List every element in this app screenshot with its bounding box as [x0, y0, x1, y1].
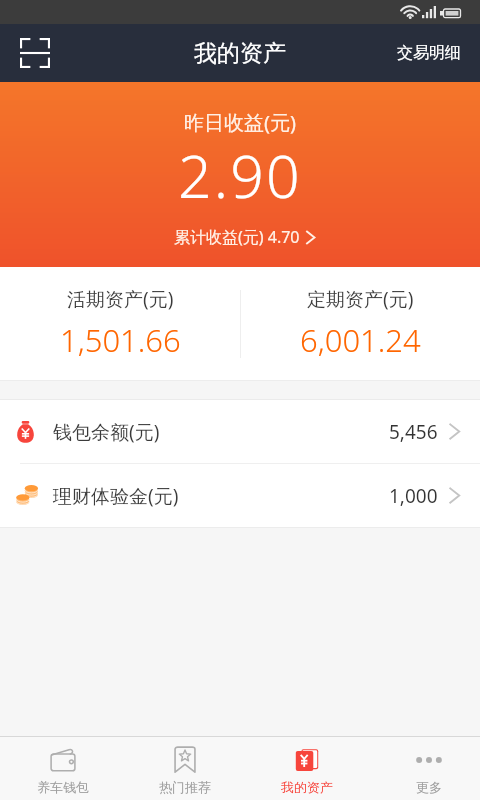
staticText: 累计收益(元) 4.70 — [174, 226, 300, 248]
staticText: 我的资产 — [194, 39, 286, 68]
staticText: 交易明细 — [397, 43, 461, 63]
button[interactable]: Scan QR code — [8, 26, 62, 80]
staticText: 热门推荐 — [159, 779, 211, 795]
staticText: 昨日收益(元) — [184, 109, 296, 136]
button[interactable]: 热门推荐 — [124, 737, 246, 800]
staticText: 定期资产(元) — [307, 286, 414, 312]
staticText: 1,501.66 — [60, 319, 181, 361]
button[interactable]: 更多 — [368, 737, 480, 800]
staticText: 5,456 — [389, 419, 438, 445]
staticText: 养车钱包 — [37, 779, 89, 795]
staticText: 1,000 — [389, 483, 438, 509]
staticText: 理财体验金(元) — [53, 483, 179, 509]
staticText: 钱包余额(元) — [53, 419, 160, 445]
button[interactable]: 理财体验金(元) — [0, 464, 480, 527]
button[interactable]: 累计收益(元) 4.70 — [168, 223, 322, 251]
button[interactable]: 我的资产 — [246, 737, 368, 800]
staticText: 6,001.24 — [300, 319, 421, 361]
staticText: 我的资产 — [281, 779, 333, 795]
staticText: 活期资产(元) — [67, 286, 174, 312]
button[interactable]: 交易明细 — [393, 35, 465, 71]
staticText: 2.90 — [178, 135, 302, 215]
button[interactable]: 钱包余额(元) — [0, 400, 480, 463]
button[interactable]: 定期资产(元) — [240, 267, 480, 380]
button[interactable]: 活期资产(元) — [0, 267, 240, 380]
staticText: 更多 — [416, 779, 442, 795]
button[interactable]: 养车钱包 — [2, 737, 124, 800]
